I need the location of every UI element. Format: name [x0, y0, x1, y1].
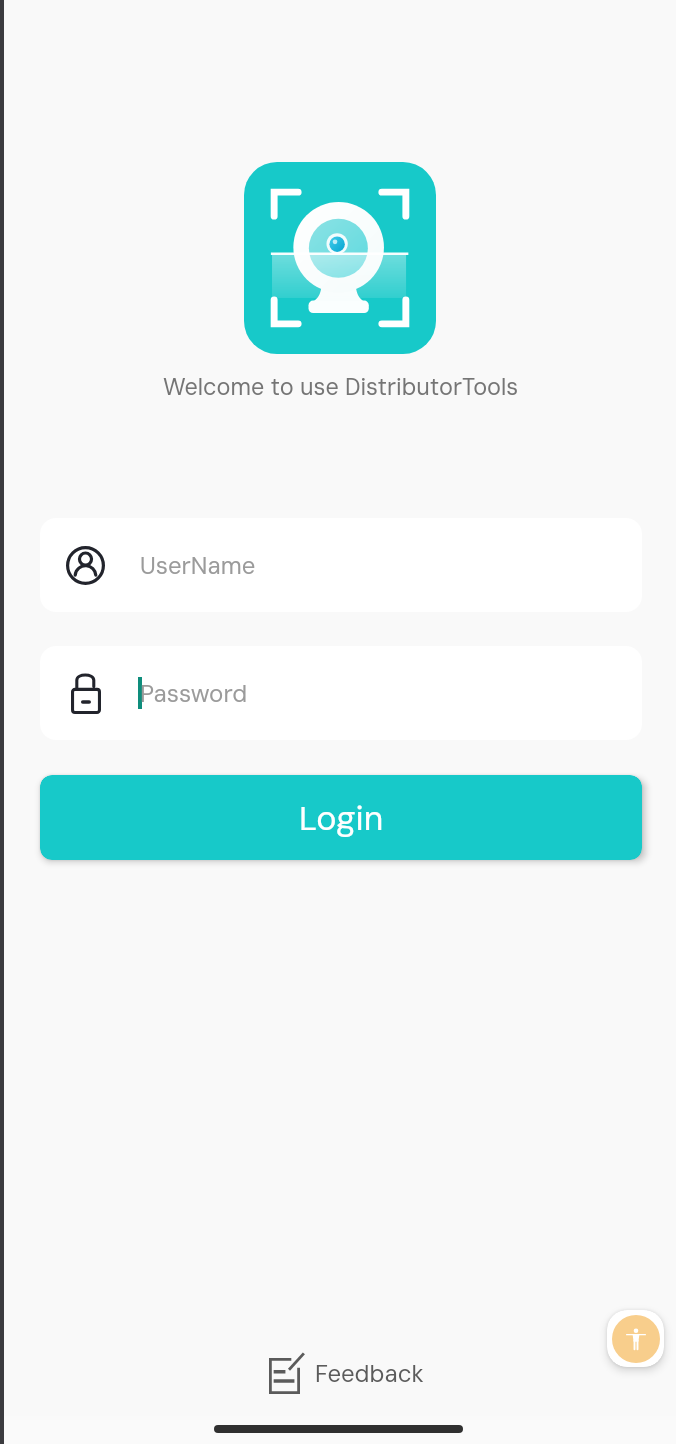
staticText: Feedback [315, 1358, 424, 1389]
button[interactable]: Feedback [263, 1349, 430, 1398]
staticText: UserName [140, 550, 256, 581]
staticText: Password [140, 678, 248, 709]
button[interactable]: Password [40, 646, 642, 740]
staticText: Login [299, 796, 384, 840]
button[interactable]: Login [40, 775, 642, 860]
staticText: Welcome to use DistributorTools [163, 372, 519, 402]
button[interactable]: UserName [40, 518, 642, 612]
button[interactable]: Accessibility [607, 1310, 664, 1367]
